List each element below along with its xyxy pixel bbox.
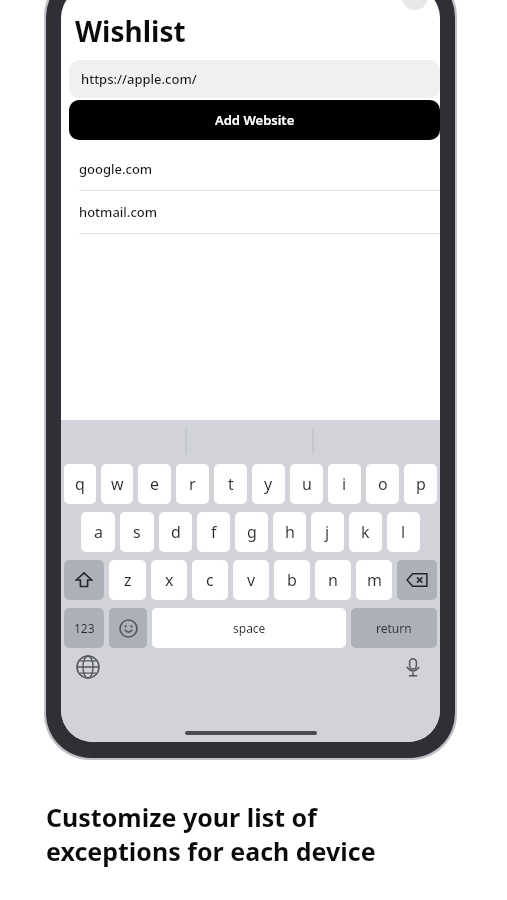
staticText: w — [111, 473, 124, 495]
staticText: m — [367, 569, 382, 591]
staticText: hotmail.com — [79, 203, 158, 221]
button[interactable]: Shift — [64, 560, 104, 600]
button[interactable]: w — [101, 464, 133, 504]
staticText: https://apple.com/ — [81, 70, 197, 88]
staticText: p — [416, 473, 426, 495]
button[interactable]: e — [138, 464, 171, 504]
button[interactable]: Add Website — [69, 100, 440, 140]
button[interactable]: https://apple.com/ — [69, 60, 440, 98]
button[interactable]: d — [159, 512, 192, 552]
button[interactable]: h — [273, 512, 306, 552]
staticText: u — [302, 473, 312, 495]
button[interactable]: Dictation — [400, 654, 426, 680]
button[interactable]: l — [387, 512, 420, 552]
staticText: v — [247, 569, 256, 591]
button[interactable]: i — [328, 464, 361, 504]
staticText: t — [228, 473, 234, 495]
button[interactable]: u — [290, 464, 323, 504]
button[interactable]: x — [151, 560, 187, 600]
button[interactable]: t — [214, 464, 247, 504]
staticText: j — [325, 521, 330, 543]
button[interactable]: space — [152, 608, 346, 648]
staticText: x — [165, 569, 174, 591]
staticText: c — [206, 569, 214, 591]
button[interactable]: c — [192, 560, 228, 600]
staticText: k — [361, 521, 370, 543]
staticText: exceptions for each device — [46, 834, 376, 868]
staticText: g — [247, 521, 257, 543]
staticText: n — [328, 569, 338, 591]
button[interactable]: Change keyboard — [75, 654, 101, 680]
staticText: space — [233, 620, 266, 636]
button[interactable]: j — [311, 512, 344, 552]
button[interactable]: hotmail.com — [61, 191, 440, 234]
staticText: r — [189, 473, 196, 495]
button[interactable]: Backspace — [397, 560, 437, 600]
button[interactable]: return — [351, 608, 437, 648]
button[interactable]: f — [197, 512, 230, 552]
staticText: Add Website — [215, 111, 295, 129]
button[interactable]: g — [235, 512, 268, 552]
staticText: l — [401, 521, 406, 543]
button[interactable]: y — [252, 464, 285, 504]
staticText: a — [94, 521, 103, 543]
button[interactable]: k — [349, 512, 382, 552]
staticText: b — [287, 569, 297, 591]
staticText: Wishlist — [75, 12, 186, 50]
staticText: d — [171, 521, 181, 543]
button[interactable]: a — [81, 512, 115, 552]
staticText: f — [211, 521, 217, 543]
staticText: i — [342, 473, 347, 495]
button[interactable]: o — [366, 464, 399, 504]
button[interactable]: m — [356, 560, 392, 600]
button[interactable]: v — [233, 560, 269, 600]
staticText: Customize your list of — [46, 800, 317, 834]
button[interactable]: r — [176, 464, 209, 504]
button[interactable]: b — [274, 560, 310, 600]
button[interactable]: s — [120, 512, 154, 552]
staticText: q — [75, 473, 85, 495]
staticText: 123 — [74, 620, 95, 636]
button[interactable]: p — [404, 464, 437, 504]
staticText: z — [124, 569, 132, 591]
button[interactable]: q — [64, 464, 96, 504]
staticText: return — [376, 620, 412, 636]
staticText: y — [264, 473, 273, 495]
staticText: google.com — [79, 160, 153, 178]
button[interactable]: Emoji — [109, 608, 147, 648]
button[interactable]: n — [315, 560, 351, 600]
staticText: e — [150, 473, 160, 495]
button[interactable]: google.com — [61, 148, 440, 191]
button[interactable]: z — [109, 560, 146, 600]
button[interactable]: 123 — [64, 608, 104, 648]
button[interactable]: Account — [402, 0, 428, 10]
staticText: h — [285, 521, 295, 543]
staticText: s — [133, 521, 141, 543]
staticText: o — [378, 473, 388, 495]
